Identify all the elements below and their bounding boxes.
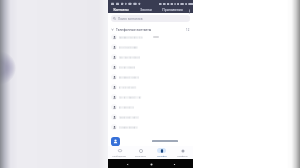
button[interactable]: Сообщения xyxy=(108,146,130,159)
button[interactable]: Звонки xyxy=(134,7,158,13)
button[interactable] xyxy=(108,122,193,132)
button[interactable] xyxy=(108,42,193,52)
staticText: Приложения xyxy=(162,8,183,12)
button[interactable] xyxy=(108,72,193,82)
button[interactable]: Add contact xyxy=(111,137,120,146)
button[interactable] xyxy=(108,112,193,122)
staticText: Контакты xyxy=(113,8,129,12)
staticText: Телефонные контакты xyxy=(116,28,152,32)
button[interactable]: Контакты xyxy=(108,7,134,13)
button[interactable] xyxy=(108,52,193,62)
button[interactable]: Телефонные контакты xyxy=(108,25,193,34)
button[interactable]: Телефон xyxy=(151,146,172,159)
staticText: Сообщения xyxy=(112,154,126,157)
button[interactable]: Home xyxy=(146,159,156,168)
staticText: Профиль xyxy=(177,154,188,157)
staticText: Телефон xyxy=(157,154,167,157)
button[interactable]: More options xyxy=(186,7,193,13)
staticText: Контакты xyxy=(135,154,146,157)
button[interactable] xyxy=(108,82,193,92)
button[interactable]: Поиск контактов xyxy=(111,15,190,22)
button[interactable] xyxy=(108,92,193,102)
button[interactable]: Контакты xyxy=(130,146,151,159)
button[interactable]: Back xyxy=(122,159,132,168)
button[interactable] xyxy=(108,62,193,72)
button[interactable]: Recents xyxy=(169,159,179,168)
staticText: Поиск контактов xyxy=(118,17,143,21)
button[interactable] xyxy=(108,102,193,112)
button[interactable] xyxy=(108,32,193,42)
button[interactable]: Профиль xyxy=(172,146,193,159)
staticText: Звонки xyxy=(140,8,152,12)
button[interactable]: Приложения xyxy=(158,7,186,13)
staticText: 12 xyxy=(186,28,190,32)
